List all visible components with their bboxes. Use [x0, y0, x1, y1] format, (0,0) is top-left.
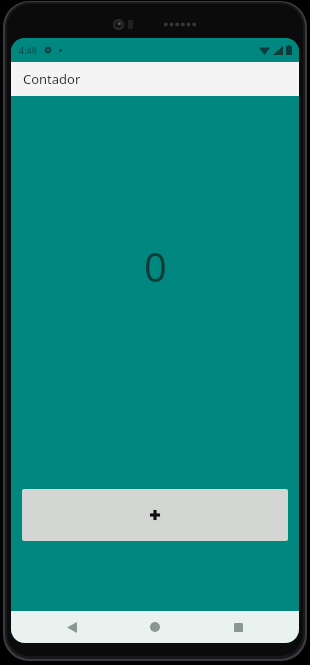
button[interactable]: Home: [133, 611, 177, 643]
staticText: 4:48: [19, 44, 37, 56]
staticText: Contador: [23, 70, 81, 88]
button[interactable]: Increment: [22, 489, 288, 541]
button[interactable]: Recent apps: [216, 611, 260, 643]
button[interactable]: Back: [50, 611, 94, 643]
staticText: 0: [144, 239, 167, 293]
